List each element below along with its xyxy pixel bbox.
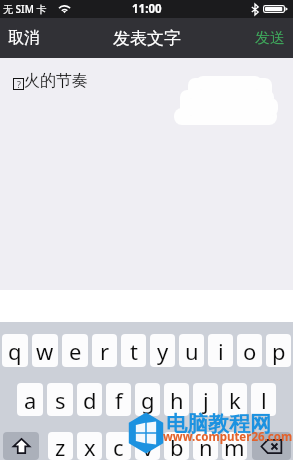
staticText: p	[272, 336, 286, 366]
button[interactable]: p	[266, 334, 291, 367]
staticText: c	[113, 432, 124, 460]
button[interactable]: k	[222, 383, 247, 416]
staticText: 11:00	[132, 1, 162, 17]
staticText: k	[229, 385, 241, 415]
staticText: a	[24, 385, 37, 415]
button[interactable]: g	[135, 383, 160, 416]
staticText: u	[185, 336, 199, 366]
button[interactable]: q	[2, 334, 28, 367]
button[interactable]: h	[164, 383, 189, 416]
button[interactable]: w	[32, 334, 58, 367]
staticText: 取消	[8, 28, 40, 48]
staticText: 发送	[255, 29, 285, 48]
button[interactable]: u	[179, 334, 204, 367]
staticText: n	[199, 432, 213, 460]
button[interactable]: 发送	[247, 20, 293, 57]
button[interactable]: Shift	[3, 432, 39, 460]
button[interactable]: 取消	[0, 19, 48, 57]
staticText: o	[243, 336, 257, 366]
staticText: d	[83, 385, 97, 415]
staticText: 火的节奏	[24, 71, 88, 91]
button[interactable]: y	[150, 334, 175, 367]
button[interactable]: l	[251, 383, 276, 416]
staticText: v	[142, 432, 154, 460]
staticText: y	[157, 336, 169, 366]
staticText: z	[55, 432, 66, 460]
button[interactable]: j	[193, 383, 218, 416]
staticText: h	[170, 385, 184, 415]
staticText: t	[130, 336, 138, 366]
button[interactable]: f	[106, 383, 131, 416]
button[interactable]: Backspace	[252, 432, 291, 460]
staticText: q	[8, 336, 22, 366]
button[interactable]: b	[164, 432, 189, 460]
button[interactable]: i	[208, 334, 233, 367]
staticText: r	[100, 336, 110, 366]
staticText: 发表文字	[113, 28, 181, 49]
button[interactable]: s	[47, 383, 73, 416]
staticText: e	[69, 336, 82, 366]
button[interactable]: m	[222, 432, 247, 460]
button[interactable]: e	[62, 334, 88, 367]
button[interactable]: a	[17, 383, 43, 416]
staticText: m	[224, 432, 245, 460]
staticText: g	[141, 385, 155, 415]
staticText: w	[36, 336, 54, 366]
staticText: 电脑教程网	[166, 411, 271, 437]
button[interactable]: v	[135, 432, 160, 460]
staticText: ?	[17, 78, 21, 90]
staticText: l	[261, 385, 267, 415]
staticText: 无 SIM 卡	[3, 2, 47, 16]
button[interactable]: c	[106, 432, 131, 460]
staticText: x	[84, 432, 96, 460]
button[interactable]: r	[92, 334, 117, 367]
button[interactable]: x	[77, 432, 102, 460]
button[interactable]: d	[77, 383, 102, 416]
button[interactable]: z	[48, 432, 73, 460]
button[interactable]: t	[121, 334, 146, 367]
staticText: www.computer26.com	[163, 429, 293, 445]
staticText: j	[203, 385, 209, 415]
staticText: b	[170, 432, 184, 460]
button[interactable]: o	[237, 334, 262, 367]
staticText: s	[55, 385, 66, 415]
button[interactable]: n	[193, 432, 218, 460]
staticText: i	[218, 336, 224, 366]
staticText: f	[115, 385, 123, 415]
